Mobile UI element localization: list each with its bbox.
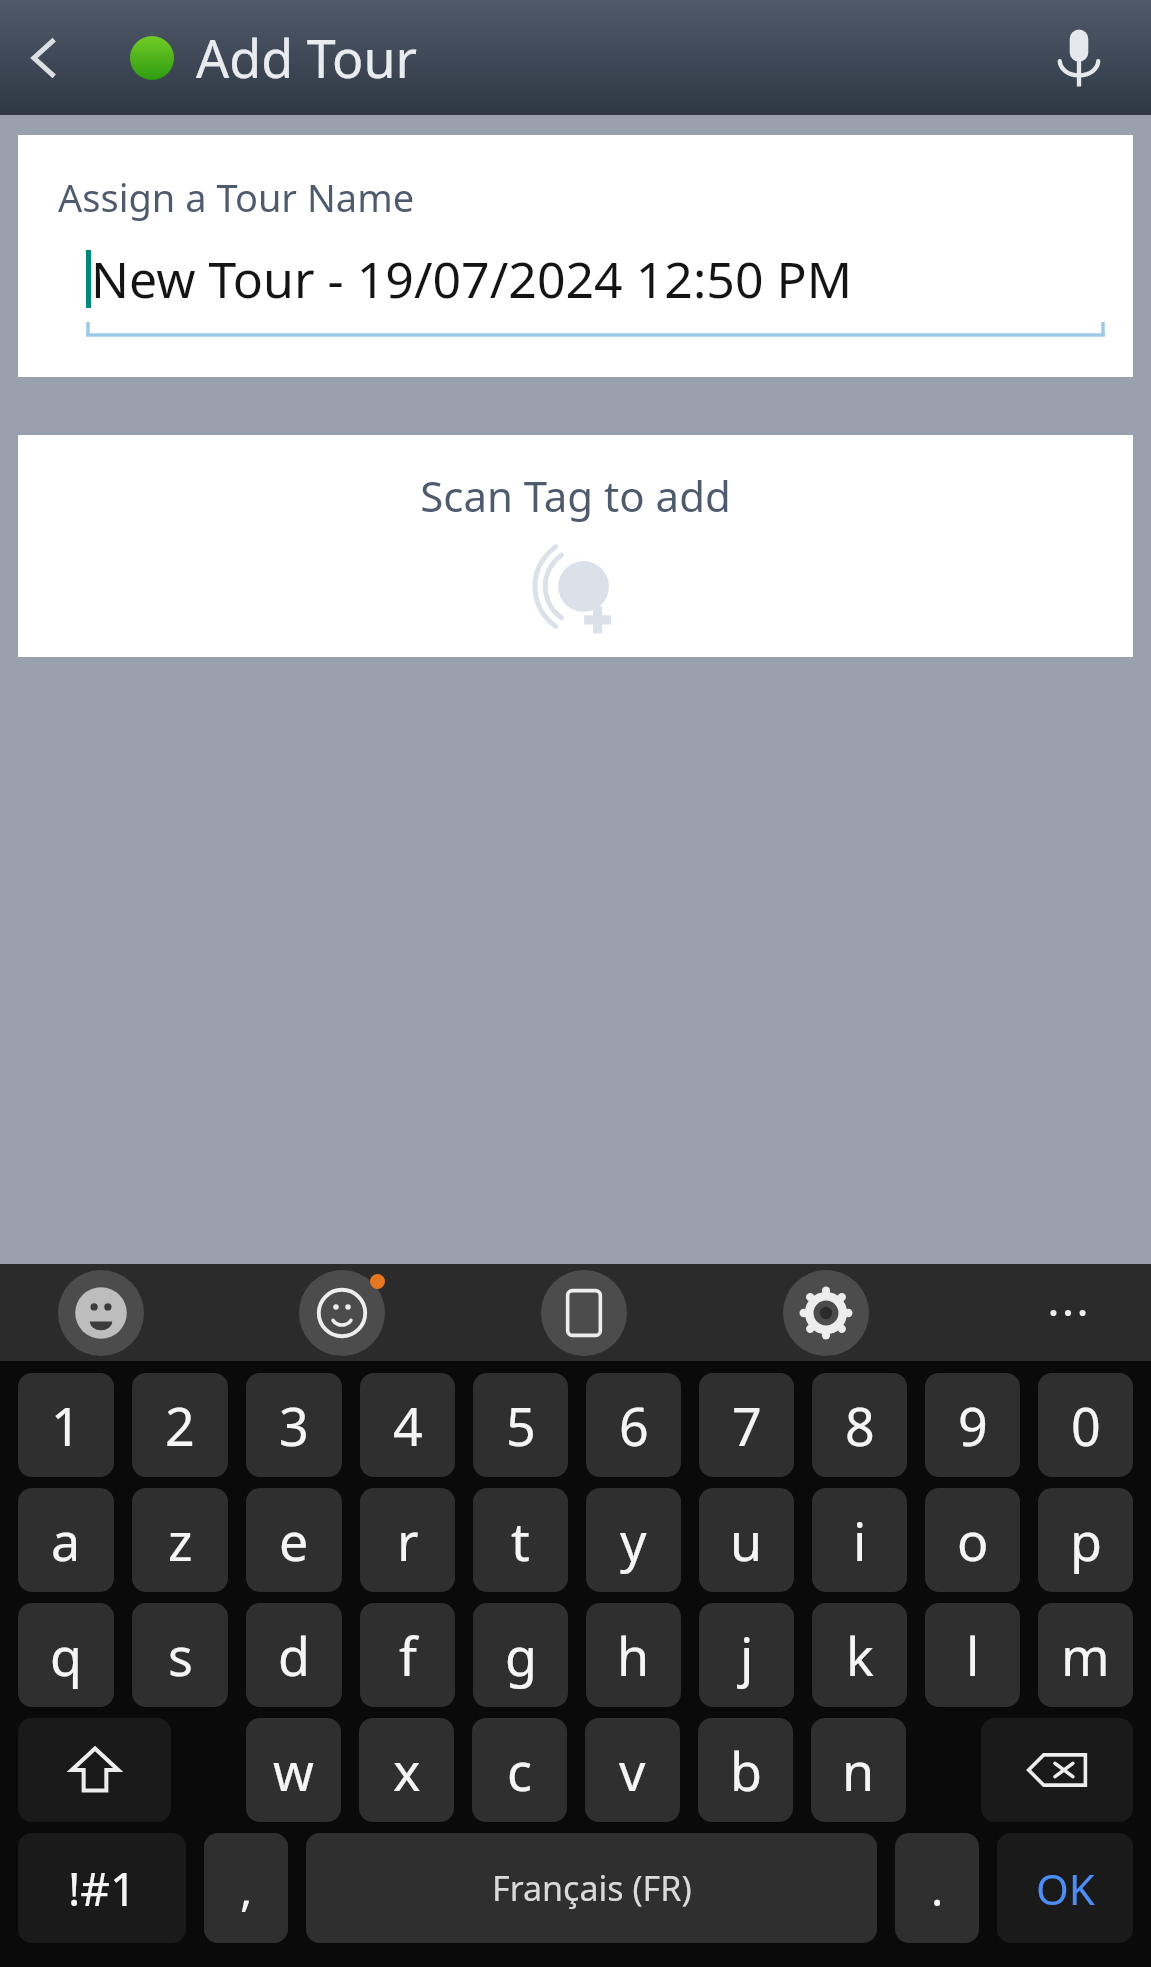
button[interactable]: 1 [18,1373,114,1477]
button[interactable]: f [360,1603,455,1707]
staticText: d [278,1620,310,1691]
staticText: g [505,1620,537,1691]
staticText: , [240,1857,253,1920]
button[interactable]: Assign a Tour Name [18,135,1133,377]
button[interactable]: z [132,1488,228,1592]
staticText: y [620,1505,647,1576]
button[interactable]: c [472,1718,567,1822]
button[interactable]: Emoji keyboard [58,1270,144,1356]
button[interactable]: 0 [1038,1373,1133,1477]
button[interactable]: 3 [246,1373,342,1477]
staticText: w [273,1735,314,1806]
staticText: 6 [619,1390,649,1461]
button[interactable]: j [699,1603,794,1707]
button[interactable]: , [204,1833,288,1943]
staticText: 1 [51,1390,81,1461]
button[interactable]: m [1038,1603,1133,1707]
button[interactable]: !#1 [18,1833,186,1943]
button[interactable]: t [473,1488,568,1592]
staticText: b [730,1735,762,1806]
button[interactable]: g [473,1603,568,1707]
button[interactable]: a [18,1488,114,1592]
button[interactable]: k [812,1603,907,1707]
button[interactable]: w [246,1718,341,1822]
button[interactable]: d [246,1603,342,1707]
button[interactable]: Voice input [1031,10,1127,106]
staticText: Assign a Tour Name [58,171,415,223]
staticText: Français (FR) [492,1865,692,1911]
staticText: z [168,1505,193,1576]
button[interactable]: s [132,1603,228,1707]
button[interactable]: i [812,1488,907,1592]
button[interactable]: q [18,1603,114,1707]
staticText: 9 [958,1390,988,1461]
button[interactable]: u [699,1488,794,1592]
staticText: Scan Tag to add [420,467,731,524]
staticText: f [399,1620,417,1691]
button[interactable]: 2 [132,1373,228,1477]
button[interactable]: h [586,1603,681,1707]
button[interactable]: n [811,1718,906,1822]
staticText: p [1070,1505,1102,1576]
staticText: 4 [393,1390,423,1461]
button[interactable]: 7 [699,1373,794,1477]
staticText: a [51,1505,81,1576]
button[interactable]: Stickers [299,1270,385,1356]
staticText: x [393,1735,421,1806]
staticText: t [511,1505,530,1576]
staticText: c [507,1735,532,1806]
staticText: n [842,1735,875,1806]
staticText: Add Tour [196,22,418,93]
button[interactable]: 6 [586,1373,681,1477]
staticText: 0 [1071,1390,1101,1461]
staticText: 3 [279,1390,309,1461]
button[interactable]: o [925,1488,1020,1592]
staticText: . [931,1857,944,1920]
button[interactable]: Back [2,15,88,101]
button[interactable]: r [360,1488,455,1592]
button[interactable]: Shift [18,1718,171,1822]
staticText: r [397,1505,419,1576]
button[interactable]: OK [997,1833,1133,1943]
button[interactable]: 4 [360,1373,455,1477]
button[interactable]: Space [306,1833,877,1943]
staticText: e [279,1505,309,1576]
staticText: l [966,1620,980,1691]
staticText: s [168,1620,193,1691]
staticText: q [50,1620,82,1691]
staticText: 2 [165,1390,195,1461]
staticText: 5 [506,1390,536,1461]
button[interactable]: b [698,1718,793,1822]
staticText: m [1061,1620,1110,1691]
staticText: k [846,1620,874,1691]
button[interactable]: 5 [473,1373,568,1477]
staticText: u [730,1505,763,1576]
button[interactable]: x [359,1718,454,1822]
button[interactable]: 8 [812,1373,907,1477]
staticText: j [740,1620,754,1691]
button[interactable]: Scan Tag to add [18,435,1133,657]
staticText: OK [1036,1860,1095,1917]
staticText: 7 [732,1390,762,1461]
button[interactable]: e [246,1488,342,1592]
staticText: !#1 [68,1857,137,1920]
button[interactable]: y [586,1488,681,1592]
staticText: o [957,1505,989,1576]
button[interactable]: GIF [541,1270,627,1356]
button[interactable]: More options [1025,1270,1111,1356]
button[interactable]: 9 [925,1373,1020,1477]
staticText: New Tour - 19/07/2024 12:50 PM [91,245,853,313]
button[interactable]: p [1038,1488,1133,1592]
staticText: i [853,1505,867,1576]
button[interactable]: v [585,1718,680,1822]
button[interactable]: l [925,1603,1020,1707]
button[interactable]: Backspace [981,1718,1133,1822]
button[interactable]: Settings [783,1270,869,1356]
button[interactable]: . [895,1833,979,1943]
staticText: v [619,1735,646,1806]
staticText: 8 [845,1390,875,1461]
staticText: h [617,1620,650,1691]
